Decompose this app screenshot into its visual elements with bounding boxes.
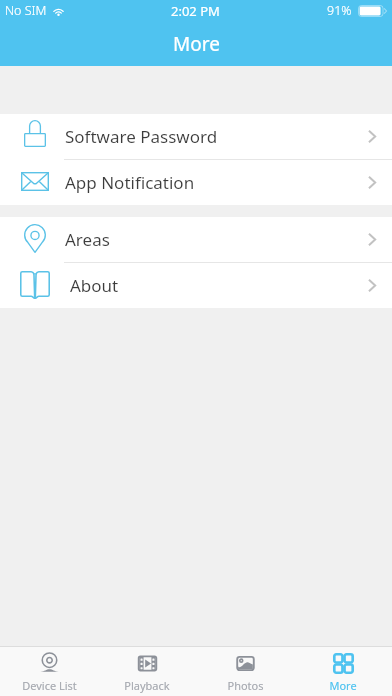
staticText: 91% xyxy=(327,2,352,19)
staticText: Software Password xyxy=(65,125,218,148)
staticText: Photos xyxy=(227,678,264,693)
other: Open App Notification xyxy=(368,176,376,189)
staticText: Device List xyxy=(22,678,77,693)
button[interactable]: Software Password xyxy=(0,114,392,159)
other: Open About xyxy=(368,279,376,292)
staticText: Areas xyxy=(65,228,110,251)
button[interactable]: Photos xyxy=(196,647,294,696)
staticText: More xyxy=(329,678,357,693)
button[interactable]: About xyxy=(0,263,392,308)
staticText: About xyxy=(70,274,119,297)
button[interactable]: More xyxy=(294,647,392,696)
button[interactable]: Device List xyxy=(0,647,98,696)
button[interactable]: App Notification xyxy=(0,160,392,205)
other: Open Areas xyxy=(368,233,376,246)
other: Open Software Password xyxy=(368,130,376,143)
button[interactable]: Areas xyxy=(0,217,392,262)
staticText: More xyxy=(173,31,220,57)
staticText: Playback xyxy=(124,678,170,693)
staticText: No SIM xyxy=(5,2,47,19)
staticText: 2:02 PM xyxy=(171,2,220,20)
staticText: App Notification xyxy=(65,171,195,194)
button[interactable]: Playback xyxy=(98,647,196,696)
